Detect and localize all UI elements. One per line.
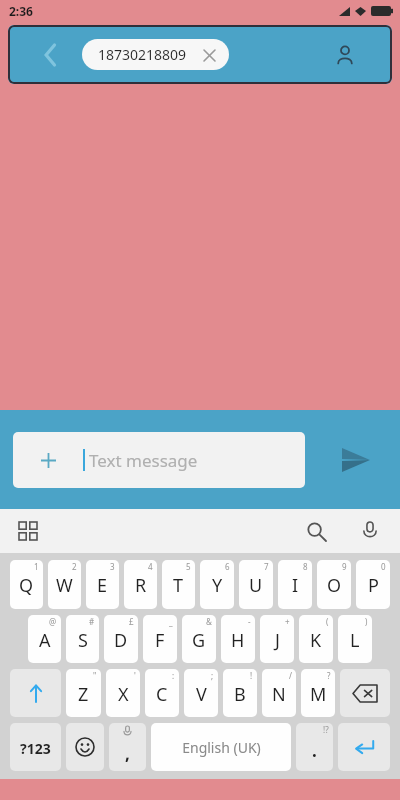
staticText: 6	[225, 561, 230, 572]
staticText: K	[310, 628, 322, 653]
staticText: F	[155, 628, 165, 653]
staticText: H	[231, 628, 245, 653]
button[interactable]: #	[66, 615, 99, 663]
staticText: @	[49, 616, 57, 627]
button[interactable]: 2	[48, 560, 81, 609]
staticText: B	[234, 682, 246, 707]
staticText: 5	[186, 561, 191, 572]
button[interactable]: _	[143, 615, 177, 663]
button[interactable]: !	[223, 669, 257, 717]
button[interactable]: :	[145, 669, 179, 717]
button[interactable]: 5	[162, 560, 195, 609]
button[interactable]: -	[221, 615, 255, 663]
button[interactable]: 3	[86, 560, 119, 609]
staticText: M	[310, 682, 327, 707]
staticText: E	[97, 573, 108, 598]
staticText: C	[156, 682, 168, 707]
staticText: Z	[78, 682, 89, 707]
staticText: .	[312, 739, 317, 762]
staticText: ?	[327, 670, 331, 681]
button[interactable]: 9	[317, 560, 351, 609]
button[interactable]: @	[28, 615, 61, 663]
button[interactable]: ?	[301, 669, 335, 717]
staticText: X	[118, 682, 129, 707]
staticText: ?123	[20, 739, 51, 758]
button[interactable]: 1	[10, 560, 43, 609]
staticText: !	[250, 670, 253, 681]
button[interactable]: 8	[278, 560, 312, 609]
button[interactable]: Emoji	[66, 723, 104, 771]
staticText: J	[275, 628, 280, 653]
button[interactable]: '	[106, 669, 140, 717]
button[interactable]: 0	[356, 560, 390, 609]
staticText: 18730218809	[98, 45, 187, 64]
staticText: D	[114, 628, 128, 653]
staticText: T	[173, 573, 184, 598]
button[interactable]: Back	[34, 38, 68, 72]
button[interactable]: !?	[296, 723, 333, 771]
button[interactable]: Voice input	[354, 515, 386, 547]
staticText: 7	[264, 561, 269, 572]
button[interactable]: /	[262, 669, 296, 717]
staticText: '	[134, 670, 136, 681]
staticText: &	[206, 616, 212, 627]
staticText: 2:36	[9, 3, 33, 19]
staticText: +	[285, 616, 290, 627]
staticText: 3	[110, 561, 115, 572]
staticText: V	[196, 682, 207, 707]
button[interactable]: Add attachment	[35, 447, 61, 473]
button[interactable]: &	[182, 615, 216, 663]
button[interactable]: +	[260, 615, 294, 663]
staticText: I	[292, 573, 299, 598]
staticText: 8	[303, 561, 308, 572]
staticText: :	[172, 670, 175, 681]
button[interactable]: "	[66, 669, 101, 717]
staticText: 0	[381, 561, 386, 572]
staticText: ,	[125, 742, 130, 765]
staticText: 9	[342, 561, 347, 572]
button[interactable]: £	[104, 615, 138, 663]
staticText: ;	[211, 670, 214, 681]
staticText: W	[56, 573, 73, 598]
staticText: -	[248, 616, 251, 627]
button[interactable]: Add contact	[328, 38, 362, 72]
button[interactable]: English (UK)	[151, 723, 291, 771]
button[interactable]: Search	[300, 515, 332, 547]
staticText: A	[39, 628, 51, 653]
staticText: English (UK)	[182, 738, 261, 757]
staticText: /	[289, 670, 292, 681]
button[interactable]: Enter	[338, 723, 390, 771]
staticText: !?	[323, 724, 329, 735]
button[interactable]: )	[338, 615, 372, 663]
button[interactable]: Add attachment	[13, 432, 305, 488]
staticText: 1	[34, 561, 39, 572]
staticText: 4	[148, 561, 153, 572]
button[interactable]: ;	[184, 669, 218, 717]
staticText: #	[89, 616, 95, 627]
staticText: £	[129, 616, 134, 627]
staticText: S	[78, 628, 88, 653]
button[interactable]: Send	[334, 438, 378, 482]
staticText: G	[192, 628, 206, 653]
button[interactable]: 7	[239, 560, 273, 609]
button[interactable]: 18730218809	[82, 39, 229, 70]
staticText: N	[272, 682, 286, 707]
staticText: _	[169, 616, 173, 627]
staticText: Text message	[89, 449, 198, 472]
button[interactable]: ,	[109, 723, 146, 771]
button[interactable]: 4	[124, 560, 157, 609]
button[interactable]: Backspace	[340, 669, 390, 717]
staticText: Y	[212, 573, 223, 598]
staticText: 2	[72, 561, 77, 572]
button[interactable]: Shift	[10, 669, 61, 717]
button[interactable]: Remove recipient	[200, 46, 218, 64]
button[interactable]: 6	[200, 560, 234, 609]
staticText: (	[326, 616, 329, 627]
button[interactable]: Keyboard options	[12, 515, 44, 547]
staticText: Q	[19, 573, 34, 598]
staticText: O	[327, 573, 342, 598]
button[interactable]: ?123	[10, 723, 61, 771]
staticText: R	[135, 573, 147, 598]
button[interactable]: (	[299, 615, 333, 663]
staticText: "	[93, 670, 97, 681]
